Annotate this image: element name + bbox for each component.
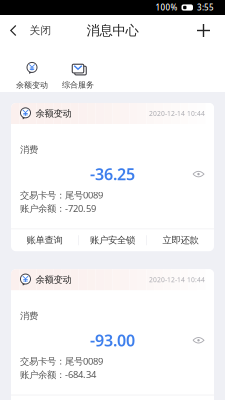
staticText: 账单查询 bbox=[27, 234, 63, 246]
staticText: 余额变动 bbox=[35, 274, 71, 285]
button[interactable]: Add bbox=[187, 15, 225, 46]
button[interactable]: 立即还款 bbox=[147, 229, 214, 251]
staticText: 3:55 bbox=[197, 2, 214, 13]
button[interactable]: Show amount bbox=[192, 169, 205, 179]
staticText: 账户余额：-684.34 bbox=[20, 368, 96, 381]
staticText: -93.00 bbox=[90, 330, 135, 351]
button[interactable]: 账单查询 bbox=[11, 229, 78, 251]
staticText: 账户安全锁 bbox=[90, 234, 135, 246]
button[interactable]: 综合服务 bbox=[55, 46, 101, 92]
staticText: 余额变动 bbox=[16, 80, 48, 90]
staticText: 交易卡号：尾号0089 bbox=[20, 189, 103, 201]
staticText: 账户余额：-720.59 bbox=[20, 202, 96, 214]
staticText: 2020-12-14 10:44 bbox=[149, 109, 205, 118]
staticText: 2020-12-14 10:44 bbox=[149, 275, 205, 284]
staticText: 100% bbox=[155, 2, 177, 13]
staticText: 消费 bbox=[20, 310, 38, 322]
staticText: 交易卡号：尾号0089 bbox=[20, 355, 103, 367]
staticText: 关闭 bbox=[30, 24, 52, 37]
button[interactable]: 余额变动 bbox=[9, 46, 55, 92]
staticText: 综合服务 bbox=[62, 80, 94, 90]
staticText: 余额变动 bbox=[35, 108, 71, 119]
staticText: 消费 bbox=[20, 144, 38, 155]
button[interactable]: 账户安全锁 bbox=[79, 229, 146, 251]
button[interactable]: 关闭 bbox=[0, 15, 58, 46]
staticText: -36.25 bbox=[90, 163, 135, 185]
staticText: 消息中心 bbox=[86, 22, 138, 39]
button[interactable]: Show amount bbox=[192, 335, 205, 345]
staticText: 立即还款 bbox=[162, 234, 198, 246]
